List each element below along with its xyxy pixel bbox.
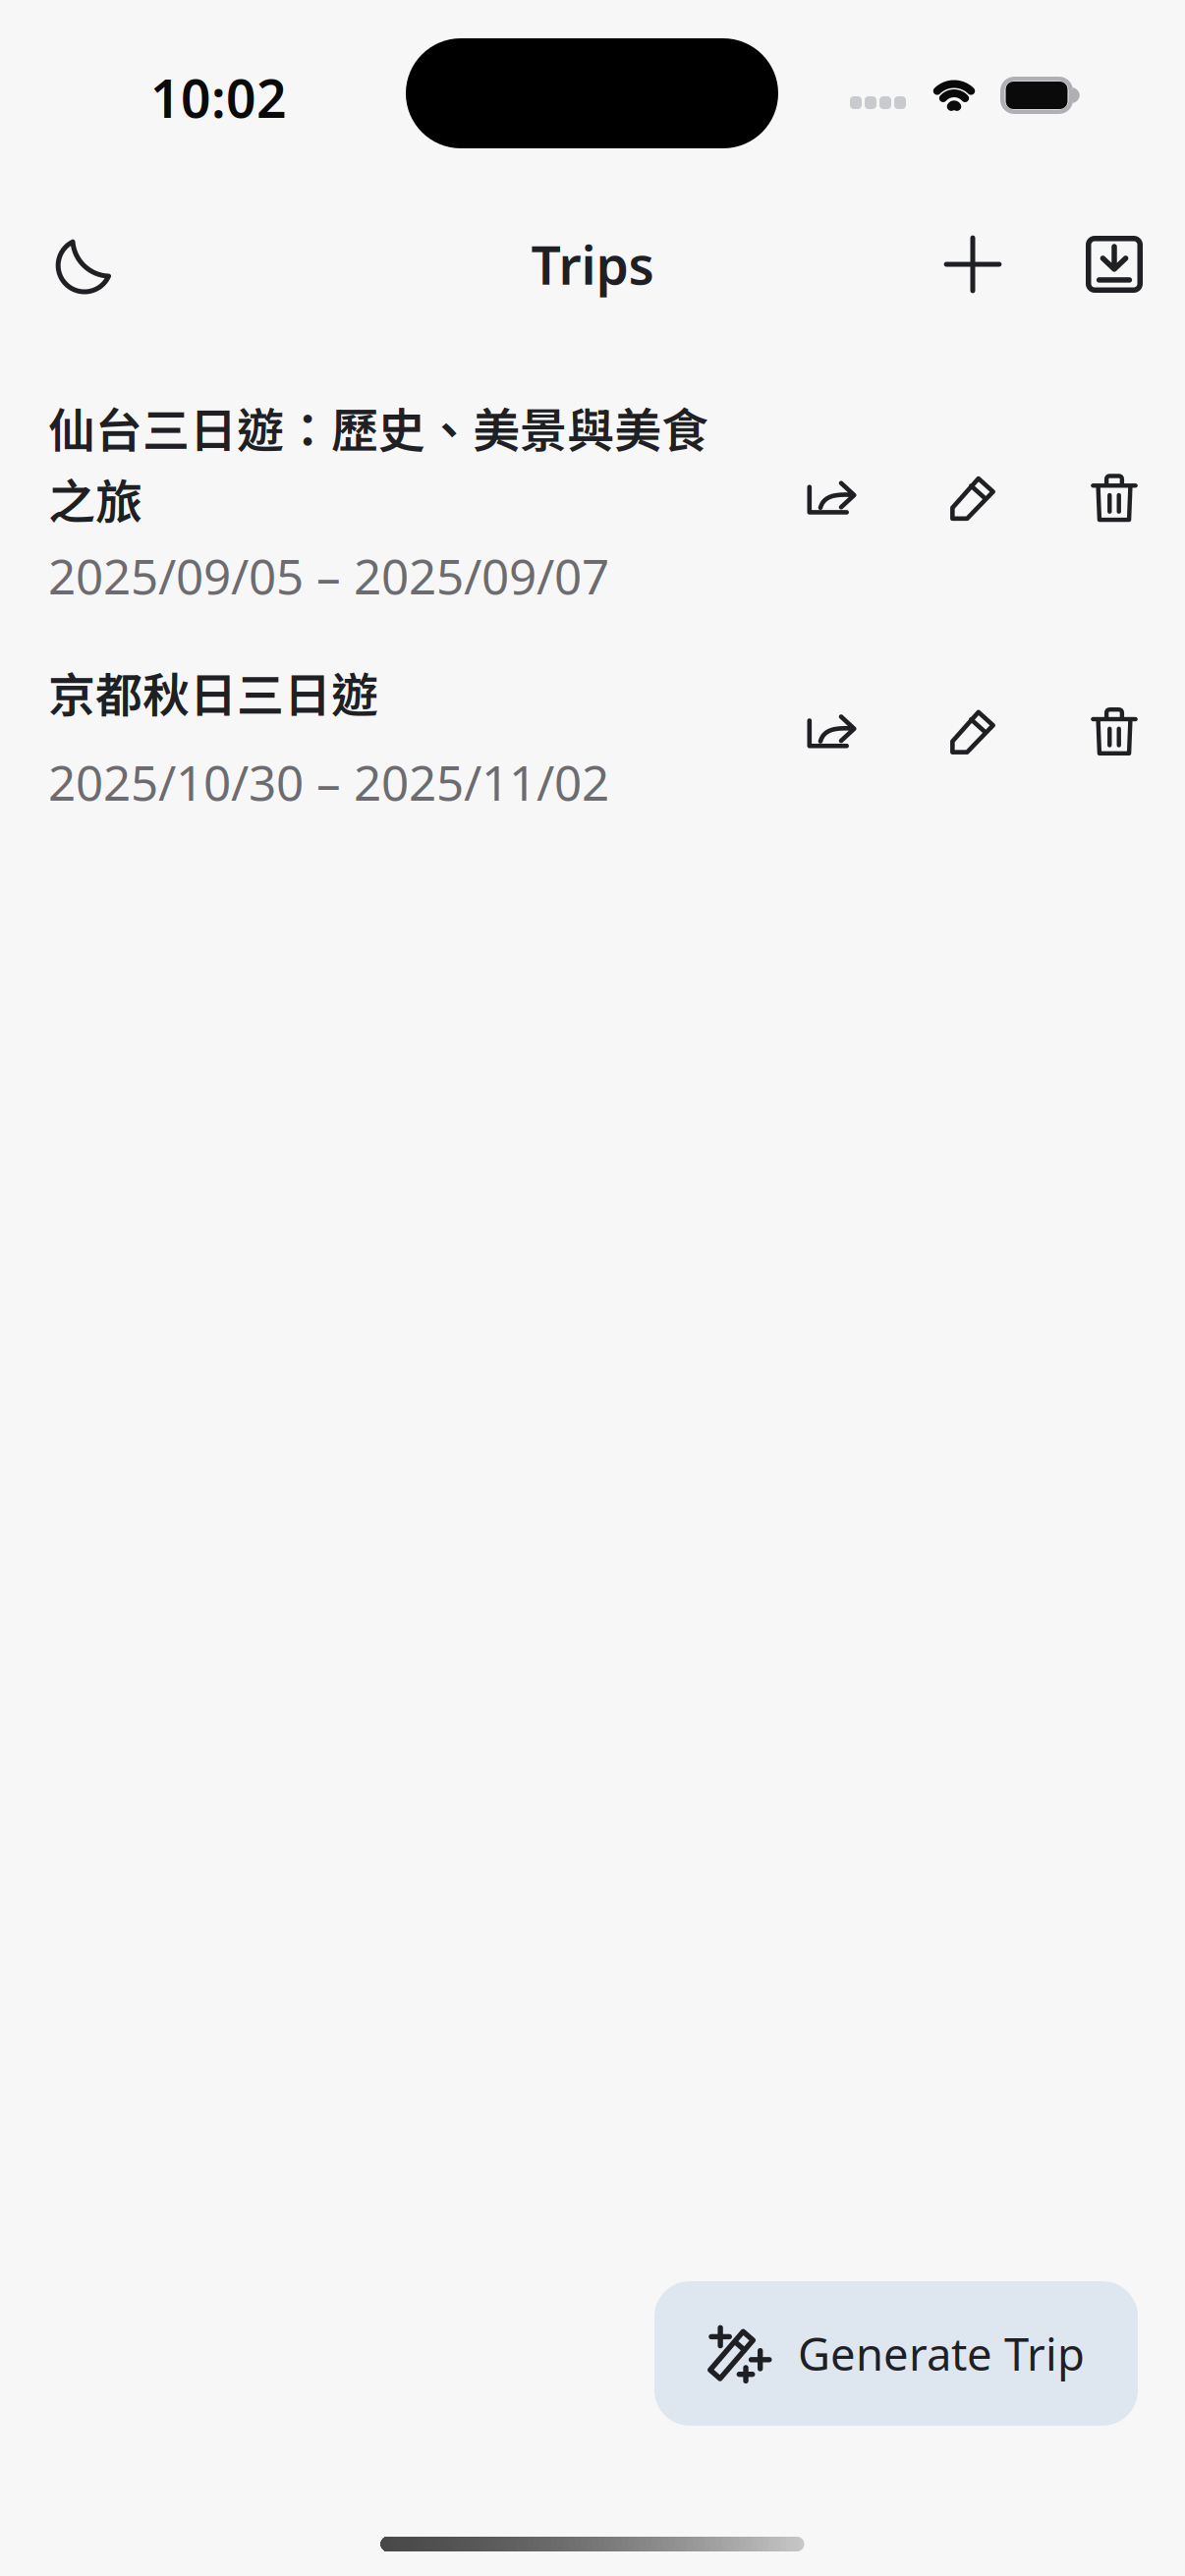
- button[interactable]: Generate Trip: [654, 2281, 1138, 2426]
- staticText: 10:02: [150, 63, 287, 132]
- button[interactable]: Share trip: [761, 684, 902, 778]
- button[interactable]: Edit trip: [902, 684, 1044, 778]
- staticText: Generate Trip: [798, 2324, 1085, 2383]
- staticText: Trips: [531, 230, 654, 299]
- button[interactable]: Import trip: [1044, 209, 1185, 319]
- button[interactable]: Toggle dark mode: [29, 209, 140, 319]
- staticText: 仙台三日遊：歷史、美景與美食之旅: [48, 393, 708, 532]
- staticText: 2025/09/05 – 2025/09/07: [48, 543, 609, 608]
- button[interactable]: Edit trip: [902, 450, 1044, 545]
- staticText: 京都秋日三日遊: [48, 658, 378, 726]
- button[interactable]: Delete trip: [1044, 450, 1185, 545]
- button[interactable]: Delete trip: [1044, 684, 1185, 778]
- button[interactable]: Add trip: [902, 209, 1044, 319]
- button[interactable]: Share trip: [761, 450, 902, 545]
- staticText: 2025/10/30 – 2025/11/02: [48, 750, 609, 814]
